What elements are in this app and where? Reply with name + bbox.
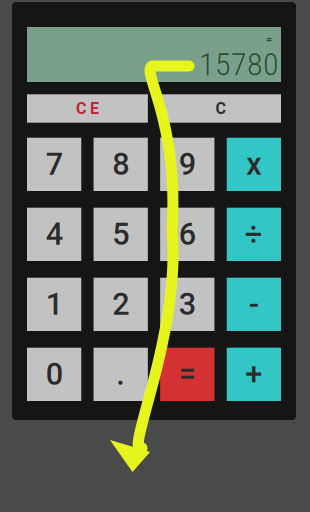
staticText: + — [245, 356, 262, 392]
staticText: 6 — [179, 216, 196, 252]
button[interactable]: = — [160, 348, 214, 401]
button[interactable]: C — [160, 94, 281, 123]
staticText: 4 — [46, 216, 63, 252]
staticText: . — [116, 356, 125, 392]
staticText: 7 — [46, 146, 63, 182]
button[interactable]: 4 — [27, 208, 81, 261]
staticText: 1 — [46, 286, 63, 322]
button[interactable]: 5 — [94, 208, 148, 261]
button[interactable]: 3 — [160, 278, 214, 331]
button[interactable]: 0 — [27, 348, 81, 401]
staticText: - — [249, 286, 259, 322]
button[interactable]: CE — [27, 94, 148, 123]
staticText: 3 — [179, 286, 196, 322]
staticText: 0 — [46, 356, 63, 392]
button[interactable]: 6 — [160, 208, 214, 261]
staticText: ÷ — [245, 216, 263, 252]
button[interactable]: 2 — [94, 278, 148, 331]
button[interactable]: 7 — [27, 138, 81, 191]
staticText: 2 — [112, 286, 129, 322]
button[interactable]: . — [94, 348, 148, 401]
button[interactable]: + — [227, 348, 281, 401]
staticText: x — [246, 146, 261, 182]
staticText: = — [179, 356, 196, 392]
button[interactable]: 8 — [94, 138, 148, 191]
button[interactable]: 9 — [160, 138, 214, 191]
staticText: 8 — [112, 146, 129, 182]
staticText: 15780 — [199, 45, 279, 83]
button[interactable]: 1 — [27, 278, 81, 331]
button[interactable]: x — [227, 138, 281, 191]
staticText: = — [266, 33, 272, 45]
button[interactable]: - — [227, 278, 281, 331]
staticText: CE — [76, 99, 99, 118]
staticText: C — [216, 99, 226, 118]
button[interactable]: ÷ — [227, 208, 281, 261]
staticText: 5 — [112, 216, 129, 252]
staticText: 9 — [179, 146, 196, 182]
